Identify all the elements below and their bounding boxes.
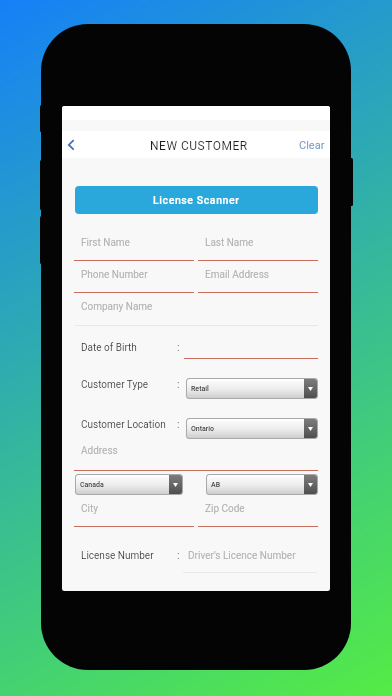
button[interactable]: Driver's Licence Number <box>188 550 296 562</box>
staticText: : <box>177 550 180 562</box>
button[interactable]: Last Name <box>205 237 254 249</box>
button[interactable]: Address <box>81 445 118 457</box>
button[interactable]: Back <box>63 131 83 158</box>
button[interactable]: AB <box>206 474 318 495</box>
staticText: License Scanner <box>153 194 240 206</box>
staticText: : <box>177 419 180 431</box>
button[interactable]: Zip Code <box>205 503 245 515</box>
button[interactable]: Company Name <box>81 301 153 313</box>
staticText: Customer Type <box>81 379 149 391</box>
button[interactable]: Canada <box>75 474 183 495</box>
button[interactable]: License Scanner <box>75 186 318 214</box>
staticText: : <box>177 342 180 354</box>
staticText: Customer Location <box>81 419 166 431</box>
button[interactable]: Retail <box>186 378 318 399</box>
staticText: Date of Birth <box>81 342 137 354</box>
button[interactable]: Ontario <box>186 418 318 439</box>
button[interactable]: Phone Number <box>81 269 148 281</box>
staticText: NEW CUSTOMER <box>150 139 248 153</box>
staticText: License Number <box>81 550 154 562</box>
staticText: : <box>177 379 180 391</box>
button[interactable]: First Name <box>81 237 130 249</box>
staticText: Ontario <box>191 425 215 433</box>
staticText: Canada <box>80 481 104 489</box>
staticText: Retail <box>191 385 209 393</box>
staticText: Clear <box>299 139 325 152</box>
button[interactable]: Email Address <box>205 269 269 281</box>
button[interactable]: City <box>81 503 98 515</box>
button[interactable]: Clear <box>292 131 330 158</box>
staticText: AB <box>211 481 221 489</box>
